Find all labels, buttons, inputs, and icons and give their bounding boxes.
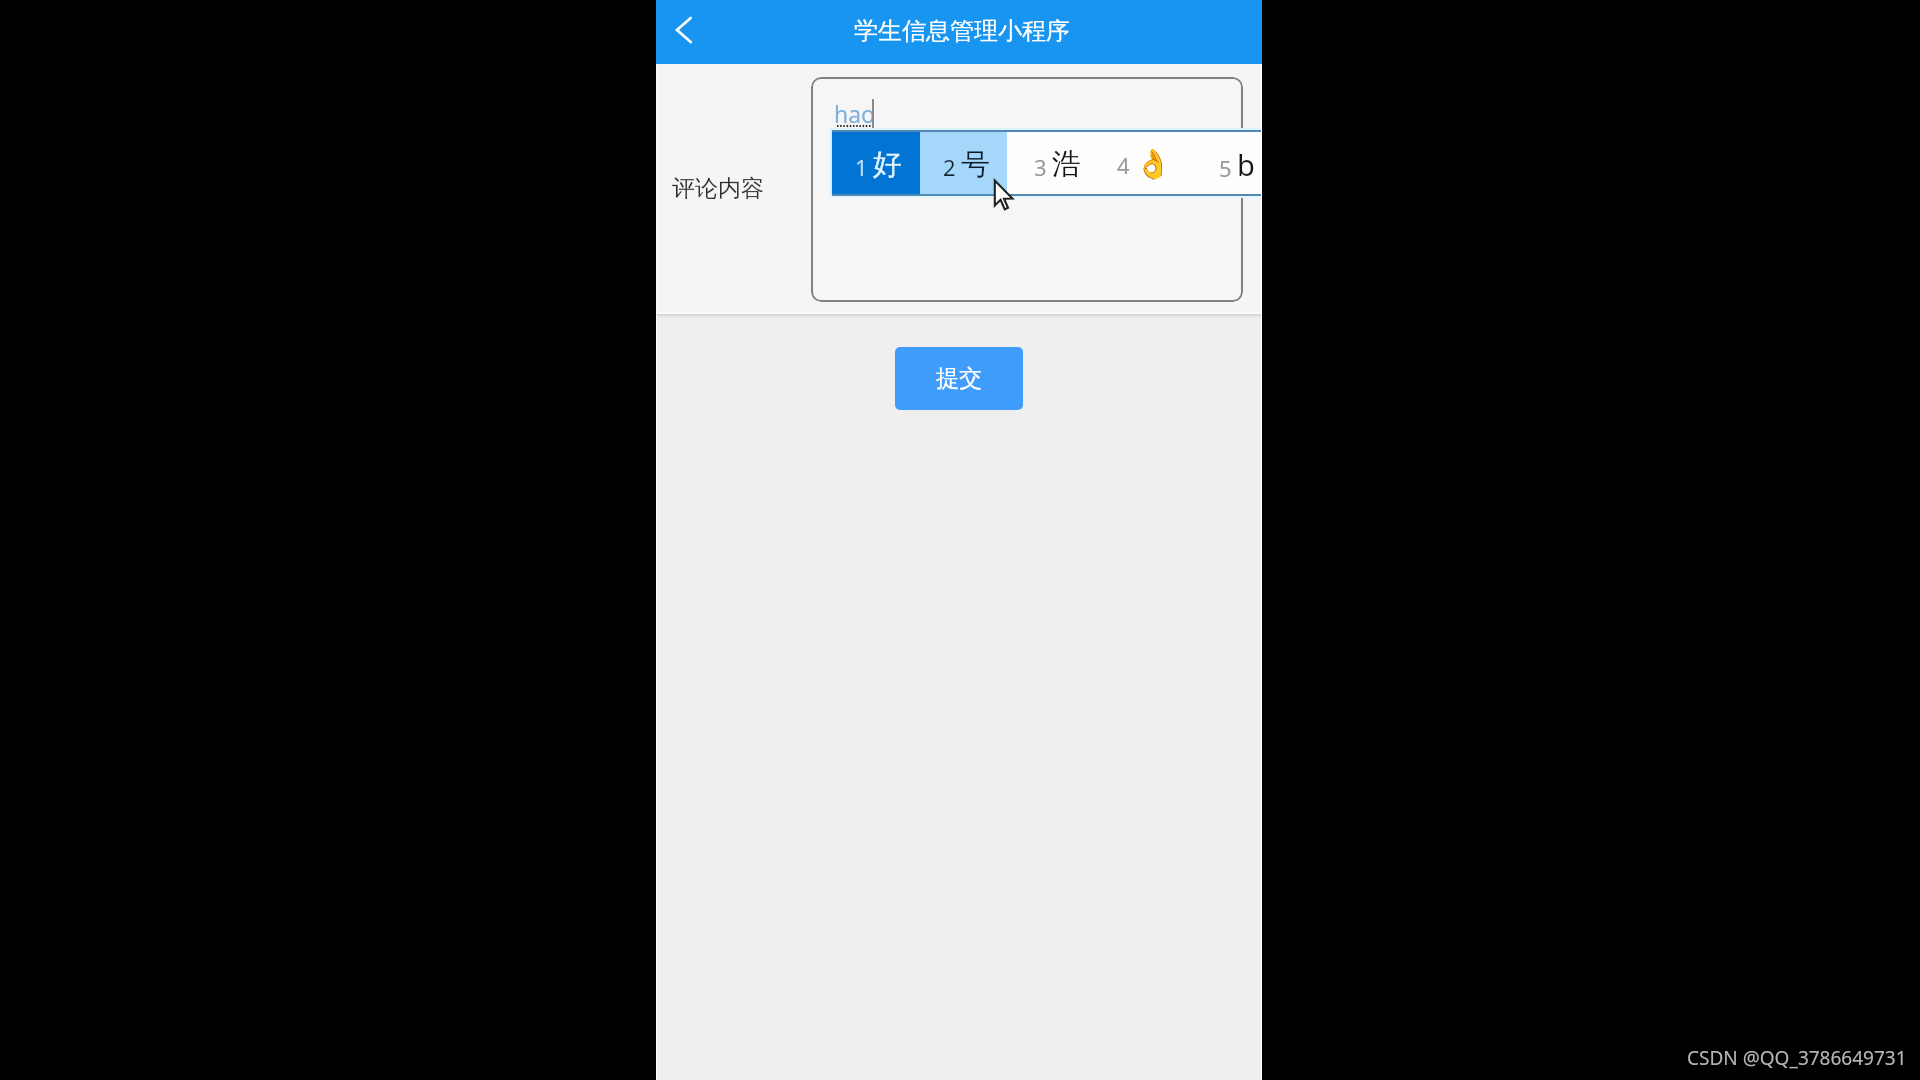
- staticText: 👌: [1135, 147, 1172, 181]
- button[interactable]: 2: [920, 132, 1007, 194]
- button[interactable]: [811, 77, 1243, 302]
- staticText: 3: [1034, 152, 1047, 182]
- staticText: 5: [1219, 153, 1232, 183]
- staticText: 浩: [1052, 146, 1081, 183]
- button[interactable]: 1: [832, 132, 920, 194]
- button[interactable]: 4: [1102, 132, 1182, 194]
- staticText: 好: [873, 146, 902, 183]
- button[interactable]: 5: [1182, 132, 1262, 194]
- staticText: b: [1237, 145, 1255, 184]
- staticText: CSDN @QQ_3786649731: [1687, 1045, 1907, 1071]
- button[interactable]: Back: [656, 0, 712, 64]
- staticText: 学生信息管理小程序: [854, 16, 1070, 46]
- button[interactable]: 3: [1007, 132, 1102, 194]
- staticText: hao: [834, 98, 876, 129]
- staticText: 号: [961, 146, 990, 183]
- staticText: 4: [1117, 150, 1130, 180]
- staticText: 2: [943, 152, 956, 182]
- staticText: 1: [855, 152, 868, 182]
- staticText: 提交: [936, 364, 982, 393]
- button[interactable]: 提交: [895, 347, 1023, 410]
- staticText: 评论内容: [672, 174, 764, 203]
